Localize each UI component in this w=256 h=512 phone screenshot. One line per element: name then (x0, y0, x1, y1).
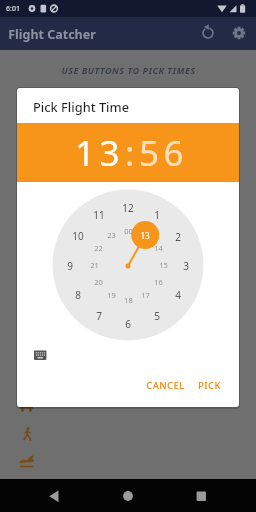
button[interactable] (229, 23, 249, 43)
staticText: 11 (93, 208, 105, 221)
staticText: 9 (67, 259, 73, 272)
staticText: 13 (140, 230, 150, 241)
staticText: 4 (175, 288, 181, 301)
staticText: : (125, 129, 139, 173)
staticText: 18 (124, 295, 133, 305)
staticText: CANCEL (146, 379, 185, 392)
button[interactable] (198, 23, 218, 43)
staticText: 2 (175, 230, 181, 243)
staticText: 14 (154, 243, 163, 253)
staticText: 12 (122, 201, 134, 214)
button[interactable]: CANCEL (137, 373, 193, 397)
staticText: Pick Flight Time (33, 98, 129, 115)
staticText: 19 (107, 290, 116, 300)
staticText: Flight Catcher (8, 26, 96, 42)
button[interactable] (30, 346, 50, 364)
staticText: 23 (107, 230, 116, 240)
staticText: 17 (141, 290, 150, 300)
staticText: 20 (94, 277, 103, 287)
staticText: 00 (124, 226, 133, 236)
staticText: 10 (72, 229, 84, 242)
staticText: 6:01 (6, 4, 20, 14)
staticText: USE BUTTONS TO PICK TIMES (61, 64, 196, 76)
staticText: 5 (154, 309, 160, 322)
staticText: 13 (75, 129, 125, 173)
staticText: 21 (90, 260, 99, 270)
button[interactable] (44, 486, 64, 506)
staticText: 6 (125, 317, 131, 330)
staticText: 22 (94, 243, 103, 253)
staticText: 3 (183, 259, 189, 272)
staticText: 15 (159, 260, 168, 270)
staticText: 1 (154, 208, 160, 221)
button[interactable] (118, 486, 138, 506)
button[interactable] (192, 486, 212, 506)
staticText: 7 (96, 309, 102, 322)
staticText: 16 (154, 277, 163, 287)
staticText: PICK (198, 379, 221, 392)
staticText: 56 (139, 129, 189, 173)
button[interactable]: PICK (189, 373, 229, 397)
staticText: 8 (75, 288, 81, 301)
